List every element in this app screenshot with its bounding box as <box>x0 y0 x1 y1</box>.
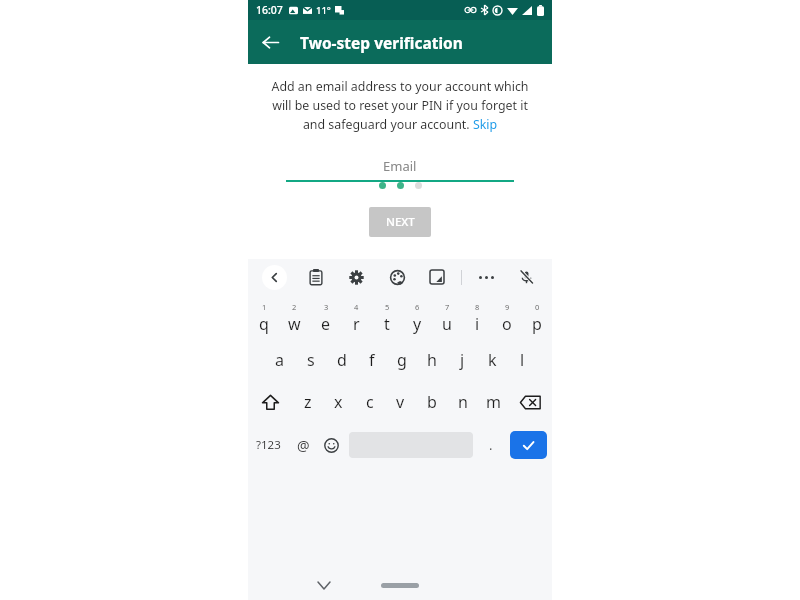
staticText: 5 <box>385 302 390 312</box>
button[interactable]: 4 <box>341 297 372 339</box>
button[interactable]: f <box>357 339 387 381</box>
staticText: i <box>475 313 480 335</box>
button[interactable]: Settings <box>336 259 377 295</box>
button[interactable]: s <box>295 339 326 381</box>
staticText: . <box>489 436 493 454</box>
staticText: b <box>427 391 437 413</box>
staticText: 7 <box>445 302 450 312</box>
staticText: 3 <box>324 302 329 312</box>
staticText: t <box>384 313 390 335</box>
button[interactable]: b <box>416 381 447 423</box>
button[interactable]: m <box>478 381 509 423</box>
button[interactable]: Resize <box>417 259 457 295</box>
staticText: v <box>396 391 405 413</box>
staticText: g <box>397 349 407 371</box>
button[interactable]: 8 <box>462 297 492 339</box>
staticText: 2 <box>292 302 297 312</box>
staticText: 1 <box>262 302 267 312</box>
button[interactable]: Back <box>248 20 292 64</box>
staticText: j <box>460 349 465 371</box>
button[interactable]: 7 <box>432 297 462 339</box>
button[interactable]: c <box>354 381 385 423</box>
button[interactable]: Emoji <box>317 423 345 467</box>
button[interactable]: 3 <box>310 297 341 339</box>
button[interactable]: 9 <box>492 297 522 339</box>
button[interactable]: j <box>447 339 477 381</box>
button[interactable]: . <box>477 423 505 467</box>
button[interactable]: d <box>326 339 357 381</box>
button[interactable]: 2 <box>279 297 310 339</box>
staticText: u <box>442 313 452 335</box>
button[interactable]: Enter <box>510 431 547 459</box>
staticText: l <box>520 349 525 371</box>
staticText: q <box>259 313 269 335</box>
staticText: 6 <box>415 302 420 312</box>
button[interactable]: x <box>323 381 354 423</box>
staticText: y <box>413 313 422 335</box>
staticText: c <box>366 391 374 413</box>
button[interactable]: More options <box>466 259 506 295</box>
staticText: 4 <box>354 302 359 312</box>
staticText: m <box>486 391 501 413</box>
button[interactable]: Previous <box>254 259 295 295</box>
staticText: @ <box>297 436 310 455</box>
staticText: 11° <box>316 4 331 17</box>
button[interactable]: g <box>387 339 417 381</box>
button[interactable]: 0 <box>522 297 552 339</box>
staticText: s <box>307 349 315 371</box>
staticText: p <box>532 313 542 335</box>
button[interactable]: Shift <box>248 381 292 423</box>
staticText: 8 <box>475 302 480 312</box>
staticText: Two-step verification <box>300 32 463 53</box>
button[interactable]: Backspace <box>509 381 552 423</box>
button[interactable]: 1 <box>248 297 279 339</box>
button[interactable]: @ <box>289 423 317 467</box>
staticText: NEXT <box>386 214 415 230</box>
staticText: Add an email address to your account whi… <box>270 78 530 132</box>
staticText: x <box>334 391 343 413</box>
button[interactable]: Theme <box>377 259 417 295</box>
button[interactable]: Hide keyboard <box>300 570 348 600</box>
staticText: k <box>488 349 497 371</box>
staticText: 16:07 <box>256 3 283 17</box>
staticText: 9 <box>505 302 510 312</box>
staticText: 0 <box>535 302 540 312</box>
staticText: e <box>321 313 331 335</box>
staticText: ?123 <box>256 437 281 453</box>
button[interactable]: n <box>447 381 478 423</box>
button[interactable]: k <box>477 339 507 381</box>
staticText: r <box>353 313 360 335</box>
button[interactable]: h <box>417 339 447 381</box>
button[interactable]: a <box>264 339 295 381</box>
button[interactable]: l <box>507 339 537 381</box>
button[interactable]: NEXT <box>369 207 431 237</box>
button[interactable]: Voice input off <box>506 259 546 295</box>
staticText: o <box>502 313 512 335</box>
staticText: w <box>288 313 301 335</box>
button[interactable]: Clipboard <box>295 259 336 295</box>
staticText: n <box>458 391 468 413</box>
staticText: Email <box>383 157 417 175</box>
button[interactable]: v <box>385 381 416 423</box>
staticText: d <box>337 349 347 371</box>
button[interactable]: ?123 <box>248 423 289 467</box>
button[interactable]: Email <box>286 156 514 176</box>
button[interactable]: 6 <box>402 297 432 339</box>
button[interactable]: z <box>292 381 323 423</box>
staticText: a <box>275 349 284 371</box>
button[interactable]: 5 <box>372 297 402 339</box>
staticText: z <box>304 391 312 413</box>
staticText: h <box>427 349 437 371</box>
staticText: f <box>369 349 375 371</box>
